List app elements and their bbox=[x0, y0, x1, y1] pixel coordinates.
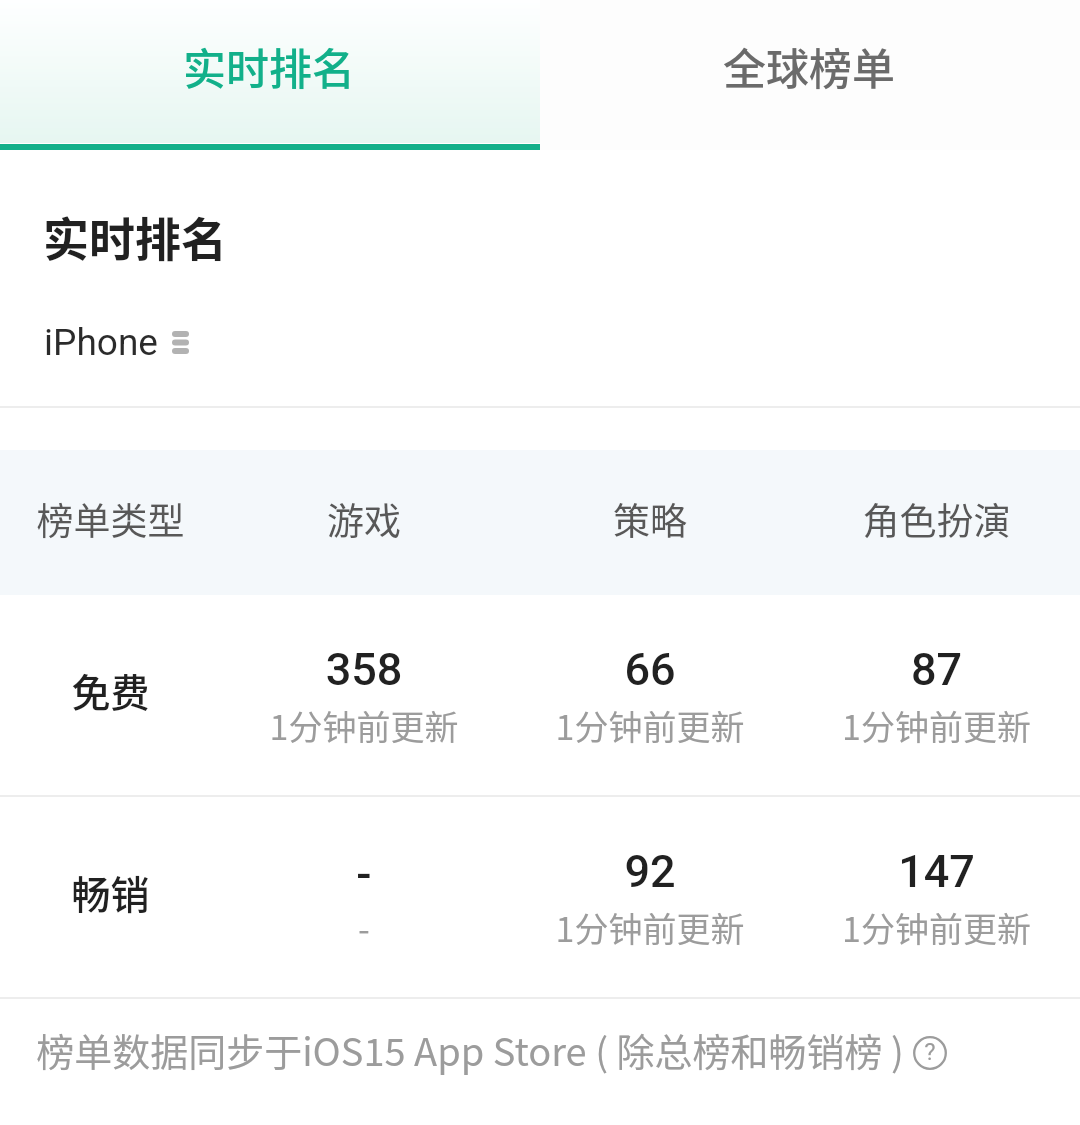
button[interactable]: 畅销 bbox=[0, 797, 1080, 997]
staticText: 榜单数据同步于iOS15 App Store ( 除总榜和畅销榜 ) bbox=[36, 1022, 904, 1077]
staticText: - bbox=[221, 903, 507, 952]
staticText: 66 bbox=[507, 643, 793, 696]
staticText: 策略 bbox=[507, 492, 793, 546]
staticText: 游戏 bbox=[221, 492, 507, 546]
staticText: iPhone bbox=[44, 321, 158, 364]
staticText: 147 bbox=[793, 845, 1080, 898]
staticText: - bbox=[221, 847, 507, 900]
staticText: 1分钟前更新 bbox=[793, 903, 1080, 952]
staticText: 1分钟前更新 bbox=[221, 701, 507, 750]
staticText: ? bbox=[924, 1038, 936, 1066]
staticText: 畅销 bbox=[0, 864, 221, 920]
staticText: 1分钟前更新 bbox=[507, 903, 793, 952]
button[interactable]: 全球榜单 bbox=[540, 0, 1080, 150]
staticText: 92 bbox=[507, 845, 793, 898]
staticText: 免费 bbox=[0, 662, 221, 718]
staticText: 全球榜单 bbox=[723, 35, 895, 97]
staticText: 87 bbox=[793, 643, 1080, 696]
staticText: 实时排名 bbox=[183, 35, 355, 97]
button[interactable]: iPhone bbox=[30, 305, 210, 375]
button[interactable]: Help about ranking data bbox=[913, 1036, 947, 1070]
button[interactable]: 实时排名 bbox=[0, 0, 540, 150]
staticText: 角色扮演 bbox=[793, 492, 1080, 546]
staticText: 1分钟前更新 bbox=[507, 701, 793, 750]
button[interactable]: 免费 bbox=[0, 595, 1080, 795]
staticText: 358 bbox=[221, 643, 507, 696]
staticText: 榜单类型 bbox=[0, 492, 221, 546]
staticText: 实时排名 bbox=[43, 203, 227, 270]
staticText: 1分钟前更新 bbox=[793, 701, 1080, 750]
